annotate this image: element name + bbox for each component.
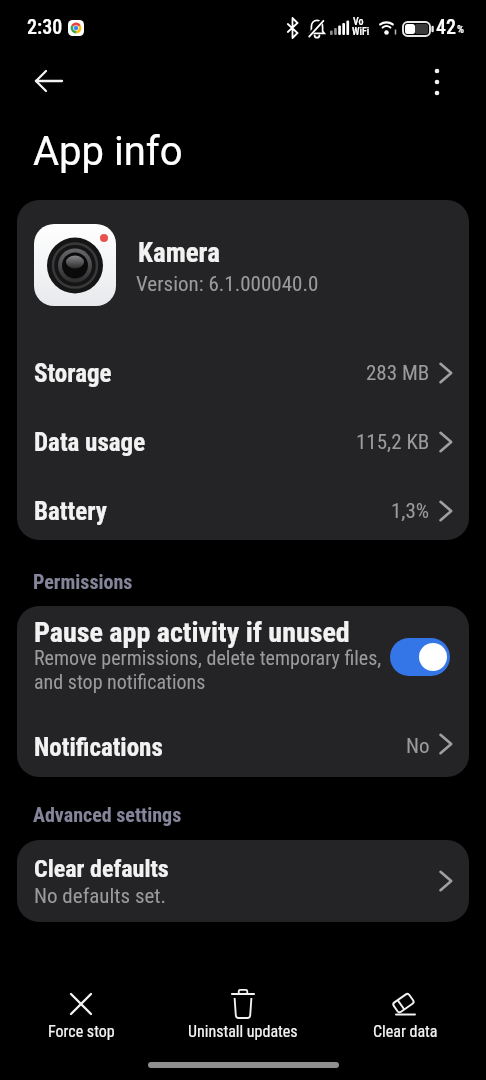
- button[interactable]: [24, 66, 72, 98]
- staticText: Permissions: [33, 570, 133, 593]
- staticText: Clear data: [373, 1022, 438, 1041]
- button[interactable]: Clear defaults: [17, 840, 469, 922]
- staticText: Uninstall updates: [188, 1022, 298, 1041]
- staticText: 2:30: [27, 15, 63, 38]
- button[interactable]: Force stop: [0, 988, 162, 1041]
- staticText: %: [457, 23, 464, 36]
- staticText: Vo: [353, 16, 364, 28]
- staticText: and stop notifications: [34, 670, 206, 693]
- staticText: App info: [33, 128, 183, 175]
- staticText: Clear defaults: [34, 855, 169, 883]
- staticText: Storage: [34, 359, 112, 388]
- staticText: 283 MB: [366, 361, 430, 386]
- button[interactable]: Uninstall updates: [162, 988, 324, 1041]
- staticText: Version: 6.1.000040.0: [136, 272, 319, 297]
- staticText: 1,3%: [391, 499, 430, 524]
- staticText: No defaults set.: [34, 884, 167, 909]
- staticText: 42: [436, 15, 457, 38]
- button[interactable]: [420, 62, 454, 102]
- button[interactable]: Storage: [17, 339, 469, 407]
- staticText: Battery: [34, 497, 107, 526]
- staticText: Force stop: [48, 1022, 115, 1041]
- staticText: Data usage: [34, 428, 146, 457]
- button[interactable]: Clear data: [324, 988, 486, 1041]
- button[interactable]: Notifications: [17, 710, 469, 777]
- staticText: Kamera: [138, 237, 220, 269]
- staticText: WiFi: [352, 26, 370, 38]
- staticText: 115,2 KB: [356, 430, 430, 455]
- staticText: Pause app activity if unused: [34, 616, 350, 649]
- button[interactable]: Data usage: [17, 408, 469, 476]
- button[interactable]: Pause app activity if unused: [17, 606, 469, 710]
- staticText: Advanced settings: [33, 803, 182, 826]
- staticText: No: [406, 734, 430, 759]
- staticText: Remove permissions, delete temporary fil…: [34, 646, 382, 669]
- button[interactable]: Battery: [17, 477, 469, 545]
- staticText: Notifications: [34, 733, 163, 762]
